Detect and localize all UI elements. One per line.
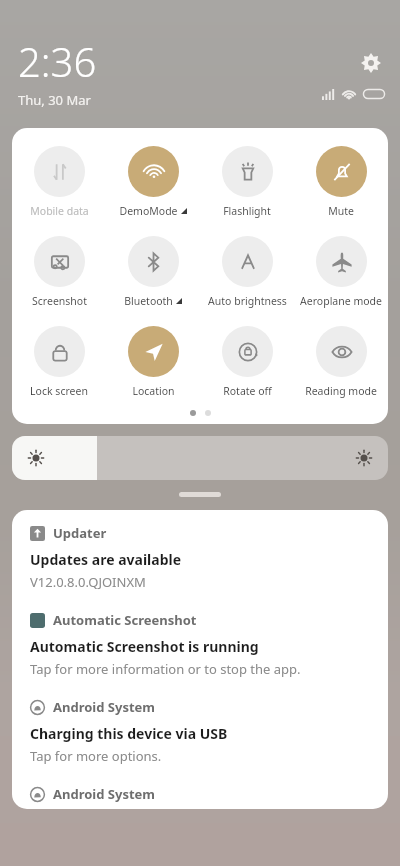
button[interactable]: Location	[106, 324, 200, 400]
staticText: Bluetooth	[124, 294, 173, 308]
button[interactable]: Reading mode	[294, 324, 388, 400]
button[interactable]: Screenshot	[12, 234, 106, 310]
staticText: Android System	[53, 698, 156, 716]
button[interactable]: Lock screen	[12, 324, 106, 400]
staticText: Lock screen	[30, 384, 88, 398]
staticText: Thu, 30 Mar	[18, 91, 91, 109]
button[interactable]: Mobile data	[12, 144, 106, 220]
staticText: 2:36	[18, 34, 97, 88]
staticText: Mute	[328, 204, 354, 218]
staticText: DemoMode	[119, 204, 178, 218]
button[interactable]: Android System	[12, 771, 388, 809]
staticText: Tap for more options.	[30, 747, 162, 765]
button[interactable]: Settings	[358, 50, 384, 76]
button[interactable]: Android System	[12, 684, 388, 771]
button[interactable]: Brightness	[12, 436, 388, 480]
staticText: V12.0.8.0.QJOINXM	[30, 573, 146, 591]
staticText: Android System	[53, 785, 156, 803]
staticText: Charging this device via USB	[30, 724, 228, 743]
button[interactable]: Mute	[294, 144, 388, 220]
button[interactable]: Aeroplane mode	[294, 234, 388, 310]
staticText: Updater	[53, 524, 107, 542]
staticText: Automatic Screenshot is running	[30, 637, 259, 656]
button[interactable]: DemoMode	[106, 144, 200, 220]
staticText: Screenshot	[32, 294, 87, 308]
button[interactable]: Updater	[12, 510, 388, 597]
staticText: Reading mode	[305, 384, 377, 398]
button[interactable]: Bluetooth	[106, 234, 200, 310]
staticText: Updates are available	[30, 550, 182, 569]
staticText: Tap for more information or to stop the …	[30, 660, 301, 678]
staticText: Location	[132, 384, 175, 398]
button[interactable]: Automatic Screenshot	[12, 597, 388, 684]
staticText: Rotate off	[223, 384, 272, 398]
staticText: Automatic Screenshot	[53, 611, 197, 629]
staticText: Mobile data	[30, 204, 89, 218]
staticText: Auto brightness	[208, 294, 287, 308]
staticText: Aeroplane mode	[300, 294, 382, 308]
button[interactable]: Rotate off	[200, 324, 294, 400]
button[interactable]: Auto brightness	[200, 234, 294, 310]
button[interactable]: Flashlight	[200, 144, 294, 220]
staticText: Flashlight	[223, 204, 271, 218]
